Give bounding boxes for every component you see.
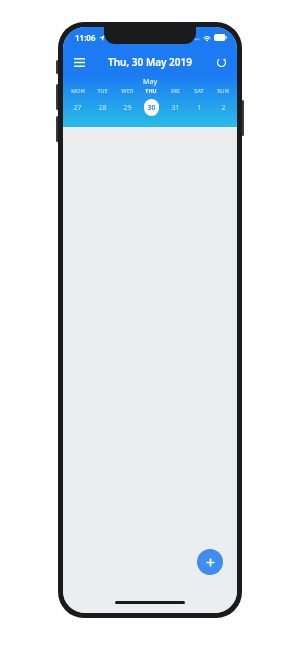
staticText: THU	[145, 87, 157, 94]
button[interactable]: FRI	[163, 87, 187, 116]
staticText: 28	[98, 103, 107, 113]
button[interactable]: THU	[139, 87, 163, 116]
staticText: 1	[197, 103, 202, 113]
staticText: Thu, 30 May 2019	[108, 55, 192, 69]
staticText: 27	[73, 103, 82, 113]
button[interactable]: WED	[115, 87, 139, 116]
staticText: MON	[71, 87, 85, 94]
button[interactable]: Add event	[197, 549, 223, 575]
staticText: WED	[121, 87, 134, 94]
button[interactable]: TUE	[90, 87, 115, 116]
staticText: 11:06	[75, 32, 96, 43]
button[interactable]: Open navigation menu	[67, 50, 91, 74]
staticText: TUE	[97, 87, 108, 94]
staticText: 30	[147, 103, 156, 113]
staticText: May	[143, 77, 158, 87]
staticText: SAT	[194, 87, 204, 94]
button[interactable]: SUN	[211, 87, 235, 116]
button[interactable]: Refresh	[209, 50, 233, 74]
button[interactable]: MON	[65, 87, 90, 116]
staticText: SUN	[217, 87, 229, 94]
staticText: FRI	[171, 87, 180, 94]
staticText: 2	[221, 103, 226, 113]
button[interactable]: SAT	[187, 87, 211, 116]
staticText: 31	[171, 103, 180, 113]
staticText: 29	[123, 103, 132, 113]
